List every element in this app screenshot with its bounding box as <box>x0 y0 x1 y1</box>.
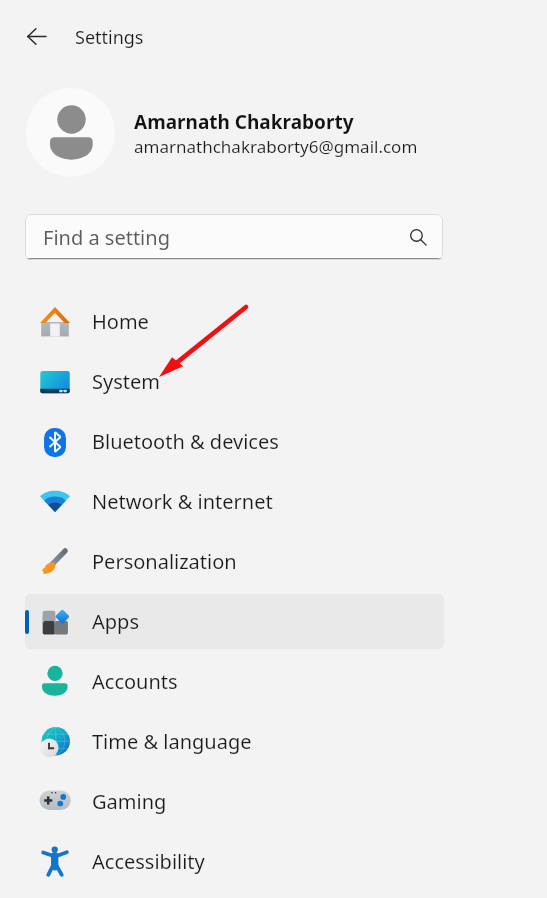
staticText: Home <box>92 308 149 335</box>
button[interactable]: Time & language <box>25 714 444 769</box>
staticText: System <box>92 368 160 395</box>
staticText: Accounts <box>92 668 178 695</box>
staticText: amarnathchakraborty6@gmail.com <box>134 135 418 158</box>
button[interactable]: Accessibility <box>25 834 444 889</box>
button[interactable]: Accounts <box>25 654 444 709</box>
staticText: Personalization <box>92 548 237 575</box>
button[interactable]: Apps <box>25 594 444 649</box>
staticText: Network & internet <box>92 488 273 515</box>
button[interactable]: Find a setting <box>25 214 443 260</box>
button[interactable]: Personalization <box>25 534 444 589</box>
button[interactable]: Gaming <box>25 774 444 829</box>
button[interactable]: Back <box>18 18 54 54</box>
button[interactable]: System <box>25 354 444 409</box>
staticText: Settings <box>75 25 144 50</box>
staticText: Gaming <box>92 788 167 815</box>
staticText: Bluetooth & devices <box>92 428 279 455</box>
staticText: Accessibility <box>92 848 205 875</box>
staticText: Apps <box>92 608 139 635</box>
button[interactable]: Home <box>25 294 444 349</box>
staticText: Find a setting <box>43 224 170 251</box>
button[interactable]: Bluetooth & devices <box>25 414 444 469</box>
staticText: Amarnath Chakraborty <box>134 109 354 135</box>
button[interactable]: Network & internet <box>25 474 444 529</box>
staticText: Time & language <box>92 728 252 755</box>
